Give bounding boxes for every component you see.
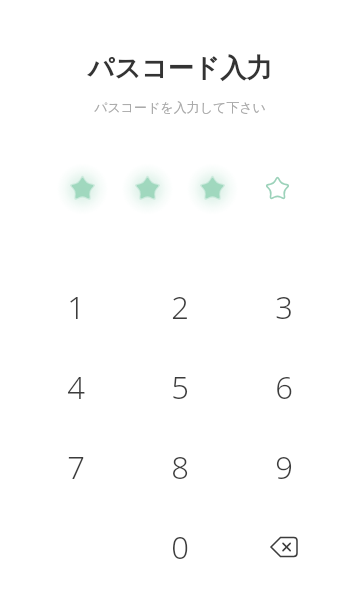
button[interactable]: 4	[24, 347, 128, 427]
button[interactable]: 7	[24, 427, 128, 507]
staticText: 1	[67, 286, 85, 328]
button[interactable]: 3	[232, 267, 336, 347]
staticText: 0	[171, 526, 189, 568]
button[interactable]: 1	[24, 267, 128, 347]
staticText: 5	[171, 366, 189, 408]
button[interactable]: 0	[128, 507, 232, 587]
button[interactable]: 9	[232, 427, 336, 507]
button[interactable]: Backspace	[232, 507, 336, 587]
staticText: 9	[275, 446, 293, 488]
button[interactable]: 8	[128, 427, 232, 507]
button[interactable]: 5	[128, 347, 232, 427]
staticText: 7	[67, 446, 85, 488]
staticText: 4	[67, 366, 85, 408]
staticText: パスコード入力	[0, 52, 360, 85]
staticText: 3	[275, 286, 293, 328]
staticText: 2	[171, 286, 189, 328]
staticText: 6	[275, 366, 293, 408]
button[interactable]: 2	[128, 267, 232, 347]
staticText: 8	[171, 446, 189, 488]
staticText: パスコードを入力して下さい	[0, 99, 360, 115]
button[interactable]: 6	[232, 347, 336, 427]
